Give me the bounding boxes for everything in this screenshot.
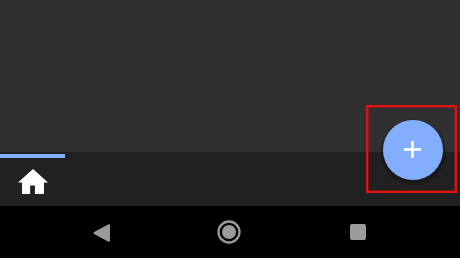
button[interactable]: Home	[205, 208, 253, 256]
button[interactable]: Back	[77, 209, 125, 257]
button[interactable]: Add	[383, 120, 443, 180]
button[interactable]: Home	[11, 159, 55, 203]
button[interactable]: Recent apps	[334, 208, 382, 256]
